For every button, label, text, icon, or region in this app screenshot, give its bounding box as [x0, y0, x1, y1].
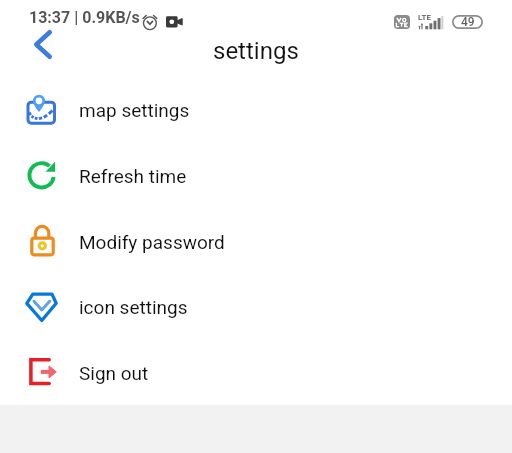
staticText: Sign out — [79, 362, 149, 384]
staticText: map settings — [79, 99, 190, 121]
staticText: LTE — [418, 13, 431, 22]
button[interactable]: Refresh time — [0, 150, 512, 202]
staticText: 13:37 | 0.9KB/s — [29, 8, 140, 27]
button[interactable]: Back — [22, 24, 63, 65]
button[interactable]: icon settings — [0, 281, 512, 333]
button[interactable]: Modify password — [0, 216, 512, 268]
staticText: icon settings — [79, 296, 188, 318]
staticText: 49 — [461, 15, 475, 29]
button[interactable]: Sign out — [0, 347, 512, 399]
staticText: Modify password — [79, 231, 225, 253]
staticText: settings — [213, 37, 299, 65]
staticText: Refresh time — [79, 165, 187, 187]
button[interactable]: map settings — [0, 84, 512, 136]
